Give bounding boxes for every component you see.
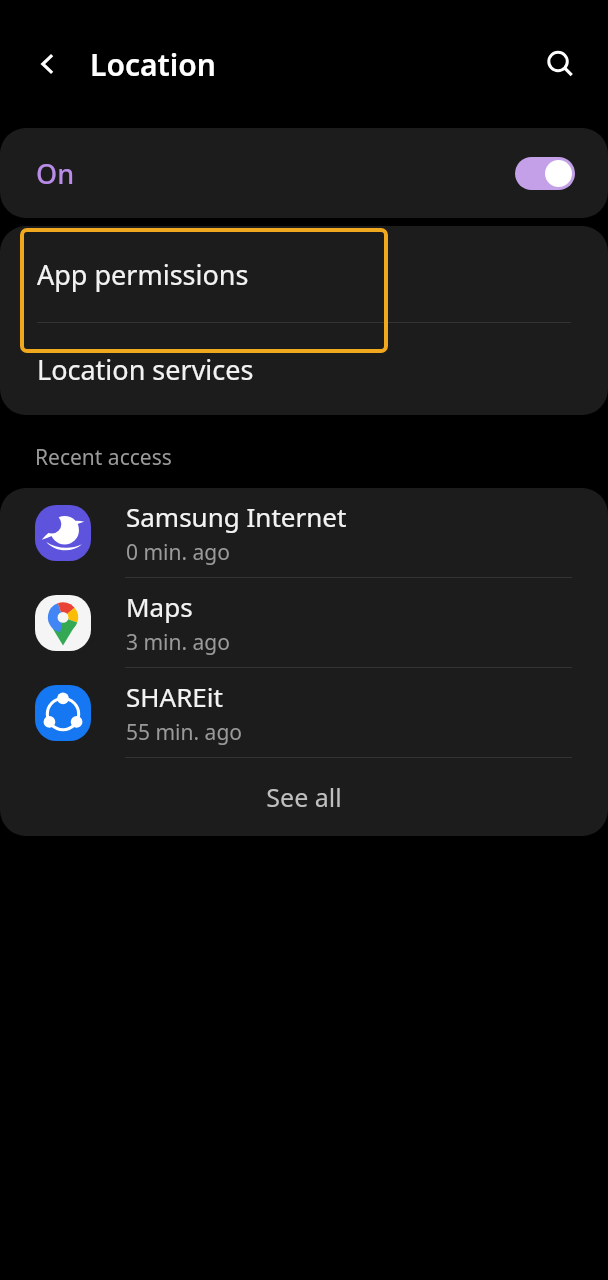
staticText: 55 min. ago <box>126 718 243 747</box>
button[interactable]: App permissions <box>0 226 608 322</box>
button[interactable]: Location services <box>0 323 608 415</box>
button[interactable]: SHAREit <box>0 668 608 757</box>
button[interactable]: See all <box>0 758 608 836</box>
staticText: SHAREit <box>126 679 223 714</box>
button[interactable]: Samsung Internet <box>0 488 608 577</box>
staticText: App permissions <box>37 256 249 293</box>
button[interactable]: Maps <box>0 578 608 667</box>
staticText: 3 min. ago <box>126 628 230 657</box>
staticText: Location services <box>37 351 254 388</box>
staticText: See all <box>266 780 342 814</box>
button[interactable]: Search <box>532 36 588 92</box>
staticText: On <box>36 155 75 192</box>
button[interactable]: On <box>0 128 608 218</box>
staticText: 0 min. ago <box>126 538 230 567</box>
staticText: Location <box>90 44 216 85</box>
button[interactable]: Back <box>20 36 76 92</box>
staticText: Maps <box>126 589 193 624</box>
staticText: Recent access <box>35 443 172 472</box>
button[interactable]: Location on <box>515 157 575 190</box>
staticText: Samsung Internet <box>126 499 347 534</box>
